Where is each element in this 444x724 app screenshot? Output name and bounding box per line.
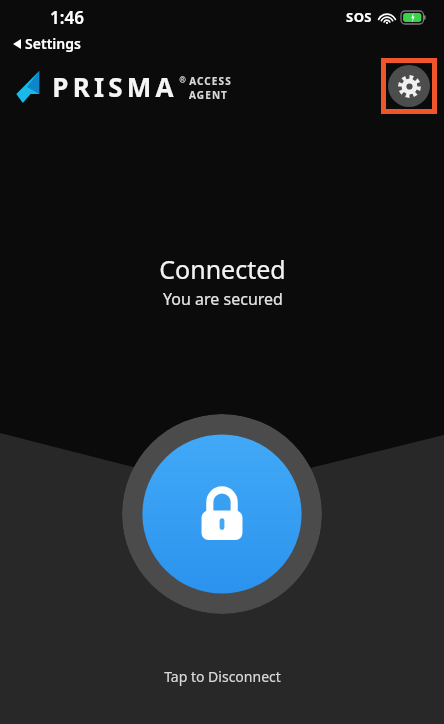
button[interactable]: Tap to Disconnect (122, 414, 322, 614)
staticText: PRISMA (52, 69, 178, 104)
staticText: You are secured (163, 288, 283, 310)
button[interactable]: Settings (11, 32, 83, 55)
staticText: ACCESS (189, 74, 232, 88)
button[interactable]: Settings (386, 63, 432, 109)
staticText: Connected (159, 252, 286, 286)
staticText: ® (179, 74, 186, 85)
staticText: 1:46 (50, 6, 84, 29)
staticText: Settings (25, 34, 81, 53)
staticText: AGENT (189, 88, 228, 102)
staticText: Tap to Disconnect (164, 667, 281, 686)
staticText: SOS (346, 8, 372, 26)
button[interactable]: Tap to Disconnect (152, 663, 293, 690)
